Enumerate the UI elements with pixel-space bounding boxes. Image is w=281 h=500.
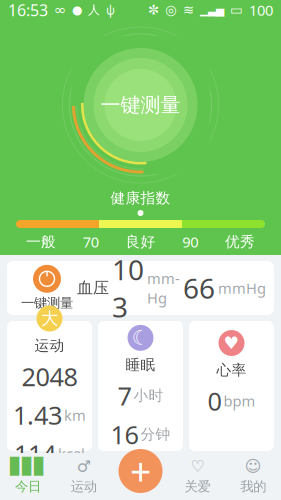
button[interactable]: ▊▊▊ bbox=[0, 453, 56, 499]
button[interactable]: ♂ bbox=[56, 453, 112, 499]
staticText: kcal bbox=[58, 444, 85, 463]
staticText: ∞ bbox=[54, 2, 66, 18]
staticText: ♥ bbox=[223, 333, 239, 353]
staticText: 一键测量 bbox=[100, 93, 180, 117]
staticText: 66 bbox=[183, 269, 215, 307]
button[interactable]: 一键测量 bbox=[7, 261, 274, 315]
staticText: 人 bbox=[88, 3, 100, 17]
staticText: 优秀 bbox=[225, 233, 255, 251]
staticText: 7 bbox=[117, 379, 131, 412]
staticText: ♂ bbox=[77, 457, 91, 475]
staticText: 大 bbox=[41, 308, 58, 329]
staticText: 103 bbox=[112, 251, 144, 325]
staticText: 一般 bbox=[26, 233, 56, 251]
staticText: 小时 bbox=[133, 387, 163, 405]
staticText: ψ bbox=[106, 2, 115, 18]
staticText: 运动 bbox=[34, 336, 64, 354]
staticText: 70 bbox=[83, 232, 99, 251]
button[interactable]: ♥ bbox=[189, 321, 274, 451]
button[interactable]: ☺ bbox=[225, 453, 281, 499]
staticText: 健康指数 bbox=[110, 189, 170, 207]
staticText: 心率 bbox=[216, 361, 246, 379]
staticText: 114 bbox=[14, 437, 56, 470]
staticText: 0 bbox=[207, 384, 221, 418]
staticText: 运动 bbox=[71, 478, 97, 495]
button[interactable]: ♡ bbox=[169, 453, 225, 499]
staticText: 良好 bbox=[125, 233, 155, 251]
staticText: 2048 bbox=[21, 359, 77, 393]
staticText: ▭ bbox=[230, 2, 243, 17]
button[interactable]: 一键测量 bbox=[0, 21, 281, 189]
staticText: ♡ bbox=[190, 457, 204, 475]
staticText: 1.43 bbox=[13, 398, 62, 432]
staticText: ☾ bbox=[131, 326, 149, 349]
staticText: ≋ bbox=[183, 2, 194, 17]
staticText: 100 bbox=[249, 0, 273, 20]
staticText: 一键测量 bbox=[21, 295, 73, 311]
button[interactable]: 添加 bbox=[118, 446, 162, 496]
staticText: 睡眠 bbox=[125, 356, 155, 374]
staticText: 16:53 bbox=[8, 0, 48, 21]
staticText: km bbox=[64, 405, 86, 425]
staticText: ☺ bbox=[245, 457, 262, 475]
staticText: 今日 bbox=[15, 478, 41, 495]
staticText: ◎ bbox=[165, 2, 177, 17]
staticText: 血压 bbox=[77, 278, 109, 298]
staticText: ● bbox=[72, 3, 82, 17]
staticText: bpm bbox=[223, 391, 255, 411]
staticText: 90 bbox=[182, 232, 198, 251]
staticText: ✼ bbox=[148, 2, 159, 17]
staticText: ▁▃▅ bbox=[200, 4, 224, 16]
staticText: mmHg bbox=[218, 278, 266, 298]
staticText: 16 bbox=[110, 417, 138, 451]
staticText: 关爱 bbox=[184, 478, 210, 495]
staticText: + bbox=[130, 446, 151, 496]
staticText: ▊▊▊ bbox=[10, 457, 46, 475]
button[interactable]: ☾ bbox=[98, 321, 183, 451]
staticText: 分钟 bbox=[140, 425, 170, 443]
staticText: mmHg bbox=[147, 268, 180, 307]
staticText: 我的 bbox=[240, 478, 266, 495]
button[interactable]: 大 bbox=[7, 321, 92, 451]
